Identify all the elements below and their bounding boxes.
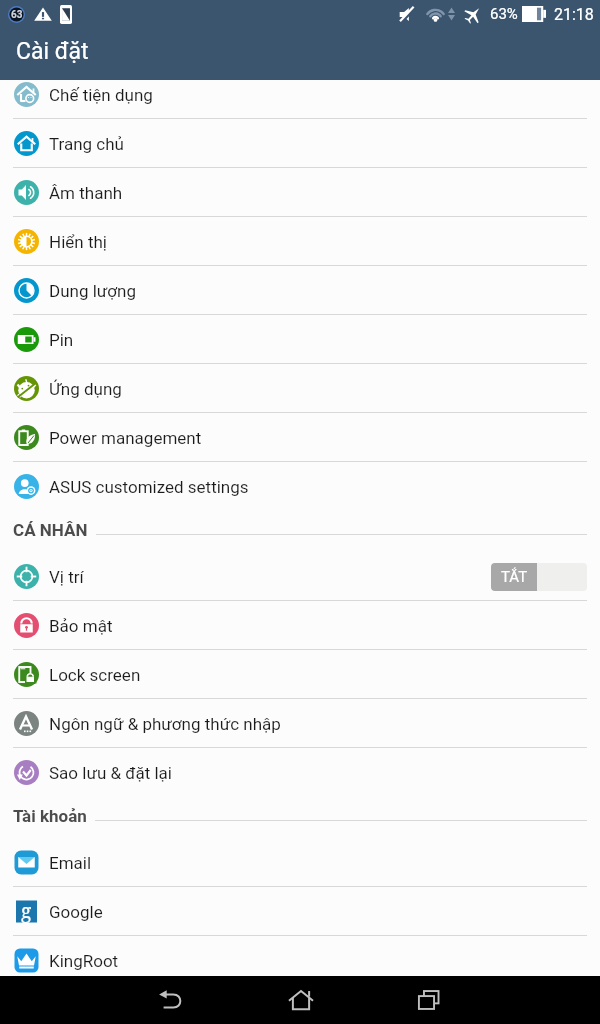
staticText: Chế tiện dụng [49, 85, 153, 105]
staticText: Pin [49, 330, 74, 350]
staticText: Trang chủ [49, 134, 124, 154]
button[interactable]: Sao lưu & đặt lại [0, 748, 600, 797]
button[interactable]: KingRoot [0, 936, 600, 985]
staticText: KingRoot [49, 951, 119, 971]
button[interactable]: Ứng dụng [0, 364, 600, 413]
button[interactable]: Chế tiện dụng [0, 70, 600, 119]
staticText: 63% [490, 5, 518, 23]
staticText: Cài đặt [16, 38, 89, 65]
button[interactable]: Back [148, 976, 196, 1024]
staticText: Email [49, 853, 92, 873]
staticText: Âm thanh [49, 183, 123, 203]
staticText: Google [49, 902, 103, 922]
button[interactable]: Power management [0, 413, 600, 462]
staticText: ASUS customized settings [49, 477, 249, 497]
staticText: Ngôn ngữ & phương thức nhập [49, 714, 281, 734]
button[interactable]: Email [0, 838, 600, 887]
staticText: 63 [11, 9, 23, 21]
staticText: TẮT [501, 568, 528, 586]
button[interactable]: TẮT [491, 563, 587, 591]
button[interactable]: Hiển thị [0, 217, 600, 266]
button[interactable]: Home [277, 976, 325, 1024]
button[interactable]: Bảo mật [0, 601, 600, 650]
button[interactable]: ASUS customized settings [0, 462, 600, 511]
staticText: Sao lưu & đặt lại [49, 763, 172, 783]
button[interactable]: Ngôn ngữ & phương thức nhập [0, 699, 600, 748]
button[interactable]: g [0, 887, 600, 936]
button[interactable]: Dung lượng [0, 266, 600, 315]
staticText: Lock screen [49, 665, 141, 685]
button[interactable]: Trang chủ [0, 119, 600, 168]
staticText: Dung lượng [49, 281, 136, 301]
staticText: Power management [49, 428, 202, 448]
button[interactable]: Pin [0, 315, 600, 364]
button[interactable]: Recents [405, 976, 453, 1024]
button[interactable]: Vị trí [0, 552, 600, 601]
button[interactable]: Âm thanh [0, 168, 600, 217]
staticText: Bảo mật [49, 616, 113, 636]
staticText: Vị trí [49, 567, 84, 587]
staticText: g [21, 898, 32, 923]
staticText: Ứng dụng [49, 379, 122, 399]
staticText: 21:18 [554, 5, 594, 24]
staticText: Hiển thị [49, 232, 107, 252]
staticText: CÁ NHÂN [13, 520, 88, 540]
button[interactable]: Lock screen [0, 650, 600, 699]
staticText: Tài khoản [13, 806, 87, 826]
